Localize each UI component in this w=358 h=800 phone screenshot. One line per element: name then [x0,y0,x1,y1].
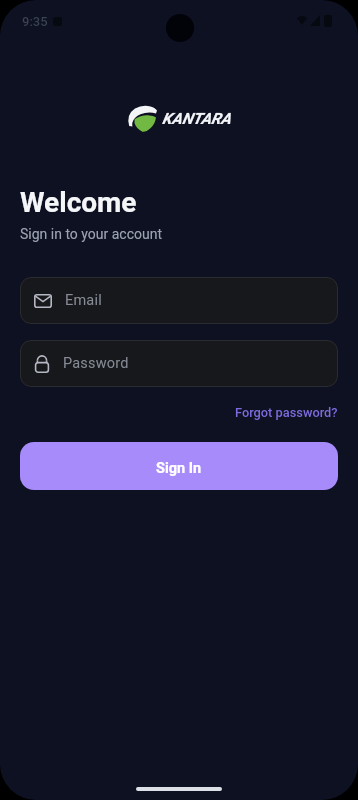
button[interactable]: Password [20,340,338,387]
staticText: KANTARA [162,110,232,128]
button[interactable]: Sign In [20,442,338,490]
staticText: Welcome [20,186,137,219]
button[interactable]: Email [20,277,338,324]
staticText: 9:35 [22,14,48,29]
staticText: Forgot password? [235,405,338,420]
staticText: Email [65,292,102,309]
button[interactable]: Forgot password? [235,405,338,420]
staticText: Password [63,355,129,372]
staticText: Sign in to your account [20,226,163,242]
staticText: Sign In [156,460,202,477]
